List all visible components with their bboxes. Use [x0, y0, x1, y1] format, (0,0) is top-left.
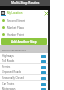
staticText: Multi-Stop Routes — [11, 1, 40, 5]
button[interactable]: Toll Roads — [0, 58, 48, 64]
staticText: Second Street — [7, 19, 26, 23]
button[interactable]: Ferries — [0, 64, 48, 70]
staticText: Unpaved Roads — [2, 70, 22, 74]
staticText: Ferries — [2, 65, 11, 69]
staticText: Seasonally Closed — [2, 76, 24, 80]
staticText: My Location — [7, 11, 23, 15]
staticText: Highways — [2, 54, 14, 58]
button[interactable]: Origin thumbnail — [0, 10, 48, 17]
button[interactable]: Harbor Point — [0, 31, 48, 38]
button[interactable]: Unpaved Roads — [0, 69, 48, 75]
button[interactable]: Add Another Stop — [1, 38, 47, 45]
staticText: Add Another Stop — [11, 40, 37, 44]
button[interactable]: Clear — [44, 11, 49, 16]
staticText: Market Plaza — [7, 26, 24, 30]
button[interactable]: Highways — [0, 53, 48, 59]
button[interactable]: Second Street — [0, 17, 48, 24]
staticText: ROUTE PREFERENCES — [2, 48, 26, 51]
button[interactable]: Car Trains — [0, 81, 48, 87]
other: Origin thumbnail — [1, 11, 5, 15]
staticText: Harbor Point — [7, 33, 24, 37]
staticText: Toll Roads — [2, 59, 15, 63]
staticText: Motorways — [2, 87, 16, 90]
button[interactable]: Seasonally Closed — [0, 75, 48, 81]
button[interactable]: Market Plaza — [0, 24, 48, 31]
button[interactable]: Motorways — [0, 86, 48, 90]
staticText: Car Trains — [2, 82, 15, 86]
